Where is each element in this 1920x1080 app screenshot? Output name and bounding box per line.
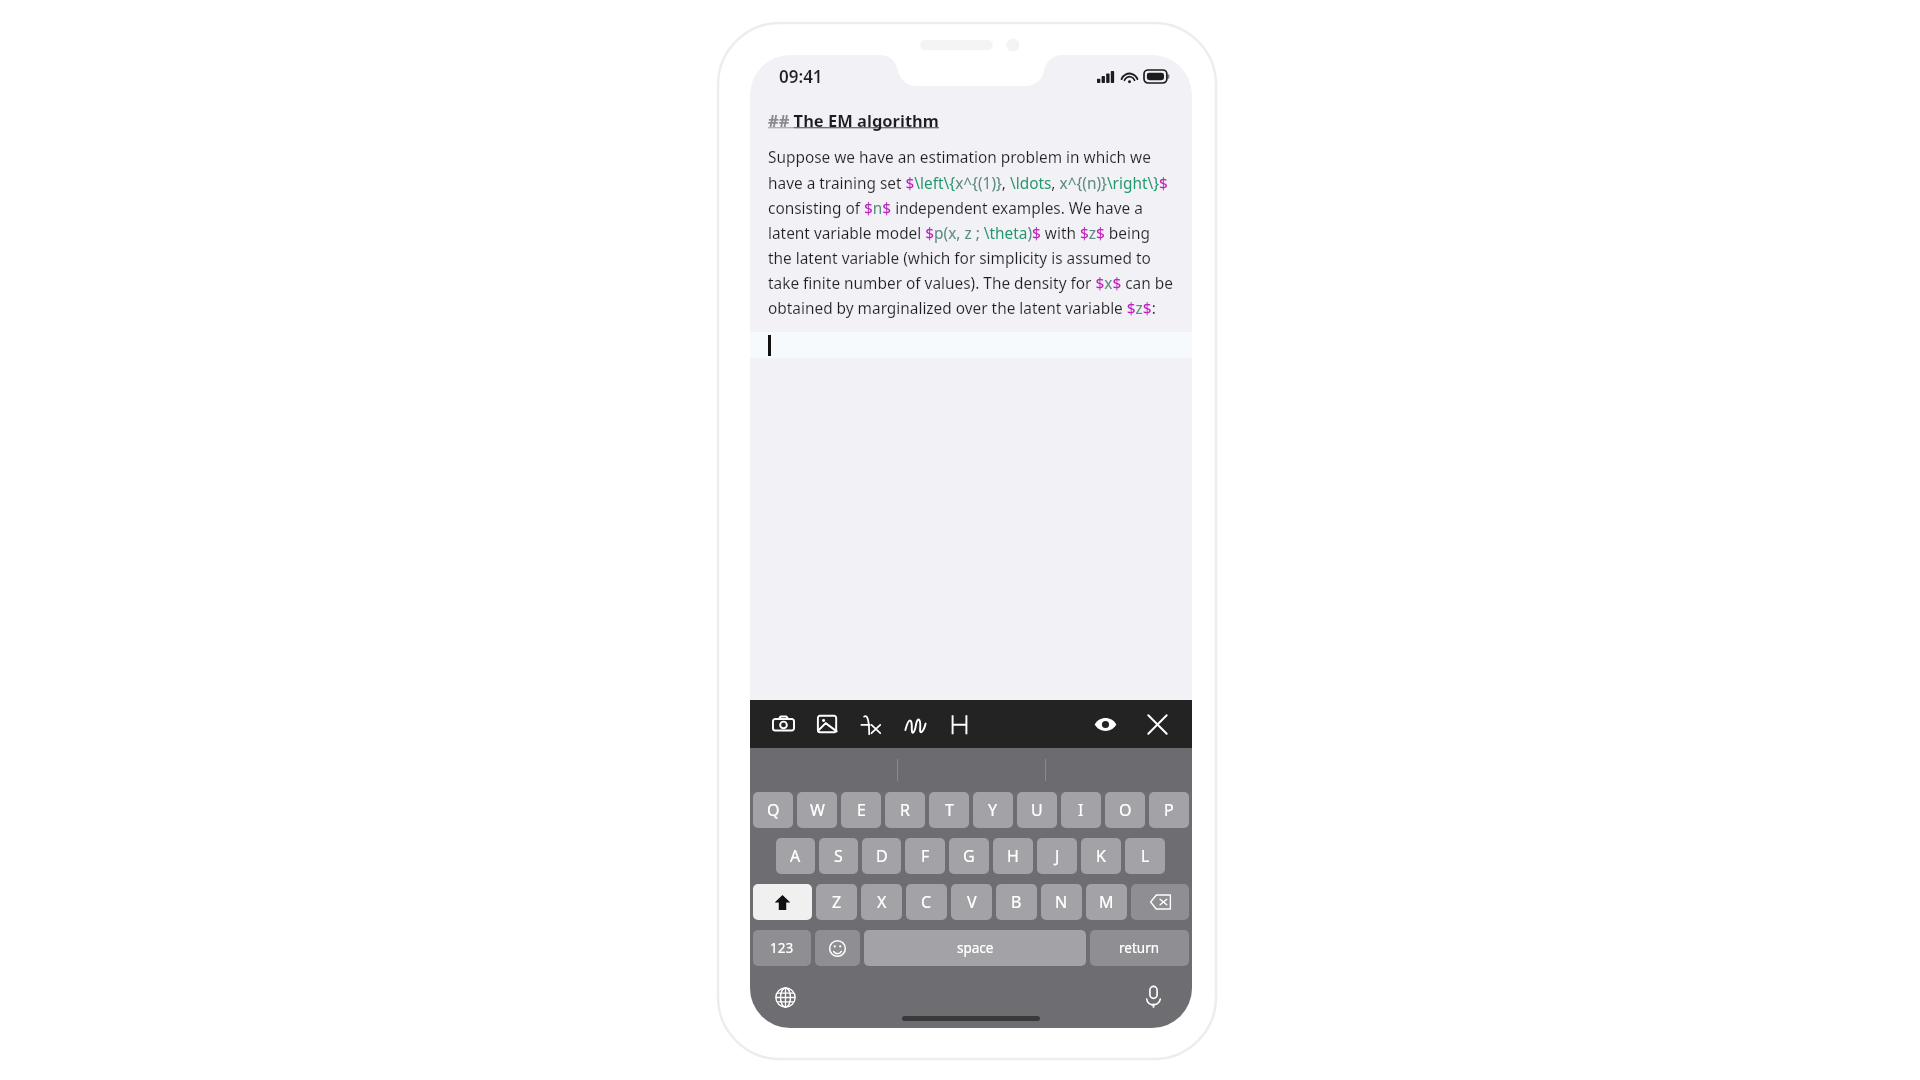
staticText: D bbox=[876, 845, 888, 867]
button[interactable]: Y bbox=[973, 792, 1013, 828]
staticText: space bbox=[957, 939, 994, 957]
staticText: 123 bbox=[770, 939, 794, 957]
staticText: H bbox=[1007, 845, 1019, 867]
button[interactable]: Q bbox=[753, 792, 793, 828]
staticText: F bbox=[921, 845, 930, 867]
button[interactable]: R bbox=[885, 792, 925, 828]
button[interactable]: V bbox=[951, 884, 992, 920]
button[interactable]: Backspace bbox=[1131, 884, 1189, 920]
staticText: R bbox=[900, 799, 910, 821]
staticText: Y bbox=[988, 799, 998, 821]
button[interactable]: D bbox=[862, 838, 901, 874]
staticText: X bbox=[877, 891, 887, 913]
button[interactable]: T bbox=[929, 792, 969, 828]
button[interactable]: Insert formula bbox=[854, 707, 888, 741]
button[interactable]: 123 bbox=[753, 930, 811, 966]
button[interactable]: A bbox=[776, 838, 815, 874]
button[interactable]: O bbox=[1105, 792, 1145, 828]
button[interactable]: Shift bbox=[753, 884, 812, 920]
button[interactable]: I bbox=[1061, 792, 1101, 828]
staticText: I bbox=[1078, 799, 1084, 821]
staticText: Suppose we have an estimation problem in… bbox=[768, 147, 1174, 318]
button[interactable]: J bbox=[1037, 838, 1077, 874]
staticText: G bbox=[963, 845, 975, 867]
staticText: N bbox=[1055, 891, 1068, 913]
staticText: K bbox=[1096, 845, 1106, 867]
staticText: return bbox=[1119, 939, 1160, 957]
button[interactable]: space bbox=[864, 930, 1086, 966]
staticText: ## The EM algorithm bbox=[768, 109, 939, 131]
button[interactable]: S bbox=[819, 838, 858, 874]
staticText: V bbox=[967, 891, 977, 913]
button[interactable]: P bbox=[1149, 792, 1189, 828]
staticText: 09:41 bbox=[779, 65, 823, 88]
staticText: L bbox=[1141, 845, 1150, 867]
button[interactable]: U bbox=[1017, 792, 1057, 828]
button[interactable]: M bbox=[1086, 884, 1127, 920]
button[interactable]: Preview bbox=[1088, 707, 1122, 741]
button[interactable]: F bbox=[905, 838, 945, 874]
staticText: W bbox=[810, 799, 825, 821]
staticText: B bbox=[1011, 891, 1022, 913]
button[interactable]: Insert image bbox=[810, 707, 844, 741]
button[interactable]: N bbox=[1041, 884, 1082, 920]
button[interactable]: G bbox=[949, 838, 989, 874]
button[interactable]: B bbox=[996, 884, 1037, 920]
button[interactable]: Change keyboard bbox=[768, 980, 802, 1014]
staticText: E bbox=[857, 799, 866, 821]
button[interactable]: Heading bbox=[942, 707, 976, 741]
button[interactable]: Dictation bbox=[1136, 980, 1170, 1014]
button[interactable]: L bbox=[1125, 838, 1165, 874]
button[interactable]: H bbox=[993, 838, 1033, 874]
staticText: M bbox=[1099, 891, 1114, 913]
button[interactable]: Close bbox=[1140, 707, 1174, 741]
staticText: P bbox=[1164, 799, 1174, 821]
staticText: Z bbox=[832, 891, 842, 913]
staticText: J bbox=[1055, 845, 1060, 867]
staticText: C bbox=[921, 891, 932, 913]
button[interactable]: X bbox=[861, 884, 902, 920]
button[interactable]: W bbox=[797, 792, 837, 828]
button[interactable]: Z bbox=[816, 884, 857, 920]
button[interactable]: Camera bbox=[766, 707, 800, 741]
staticText: O bbox=[1119, 799, 1132, 821]
button[interactable]: K bbox=[1081, 838, 1121, 874]
button[interactable]: Draw bbox=[898, 707, 932, 741]
button[interactable]: Emoji bbox=[815, 930, 860, 966]
button[interactable]: E bbox=[841, 792, 881, 828]
staticText: U bbox=[1031, 799, 1043, 821]
button[interactable]: return bbox=[1090, 930, 1189, 966]
button[interactable]: C bbox=[906, 884, 947, 920]
staticText: Q bbox=[767, 799, 780, 821]
staticText: T bbox=[945, 799, 954, 821]
staticText: A bbox=[790, 845, 801, 867]
staticText: S bbox=[834, 845, 843, 867]
